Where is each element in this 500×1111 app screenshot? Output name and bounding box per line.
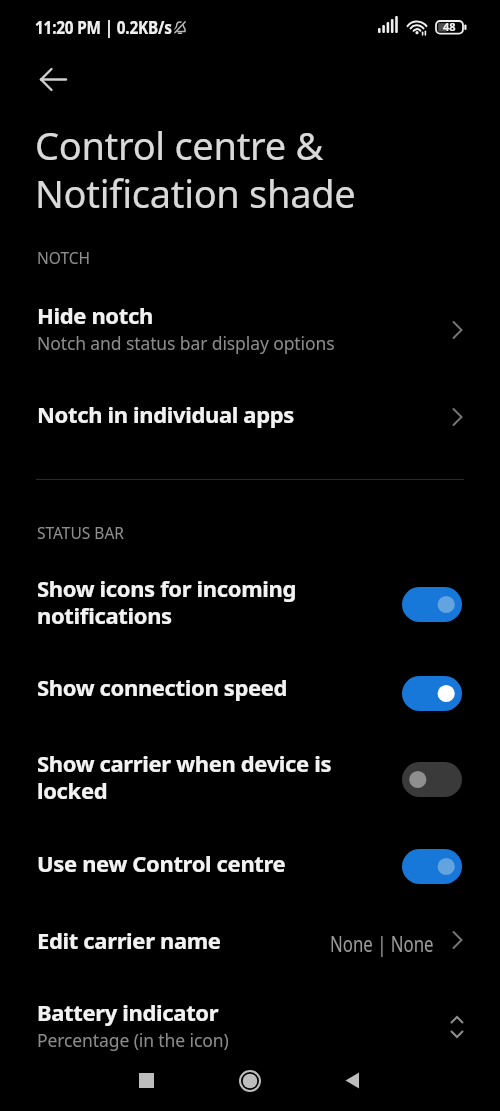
- staticText: None | None: [330, 930, 434, 959]
- staticText: 48: [443, 19, 456, 34]
- staticText: 11:20 PM | 0.2KB/s: [35, 15, 172, 40]
- staticText: NOTCH: [37, 247, 91, 268]
- staticText: STATUS BAR: [37, 522, 124, 543]
- button[interactable]: Use new Control centre: [0, 830, 500, 902]
- button[interactable]: Show carrier when device is locked: [0, 740, 500, 820]
- button[interactable]: Show connection speed: [0, 655, 500, 730]
- staticText: Percentage (in the icon): [37, 1028, 229, 1052]
- staticText: Notch and status bar display options: [37, 331, 335, 355]
- staticText: Show carrier when device is locked: [37, 748, 332, 805]
- button[interactable]: [338, 1066, 367, 1095]
- staticText: Notch in individual apps: [37, 399, 294, 429]
- button[interactable]: Battery indicator: [0, 985, 500, 1058]
- staticText: Hide notch: [37, 300, 153, 330]
- staticText: Show icons for incoming notifications: [37, 573, 297, 630]
- button[interactable]: [132, 1066, 161, 1095]
- staticText: Control centre & Notification shade: [35, 119, 356, 219]
- staticText: Edit carrier name: [37, 925, 221, 955]
- button[interactable]: Notch in individual apps: [0, 390, 500, 446]
- button[interactable]: [30, 56, 76, 102]
- staticText: Show connection speed: [37, 672, 288, 702]
- button[interactable]: Edit carrier name: [0, 910, 500, 970]
- button[interactable]: Show icons for incoming notifications: [0, 565, 500, 645]
- staticText: Battery indicator: [37, 997, 219, 1027]
- button[interactable]: Hide notch: [0, 292, 500, 366]
- staticText: Use new Control centre: [37, 848, 286, 878]
- button[interactable]: [235, 1066, 264, 1095]
